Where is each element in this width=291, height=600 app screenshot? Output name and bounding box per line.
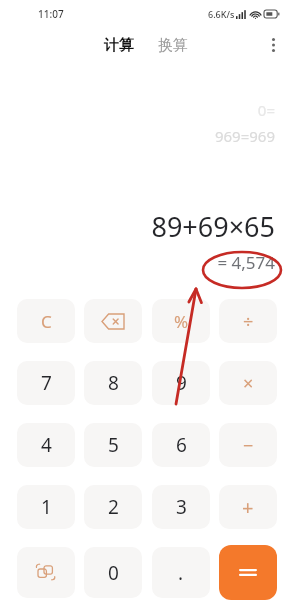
staticText: = 4,574 <box>217 251 275 274</box>
button[interactable]: C <box>17 299 75 343</box>
staticText: 8 <box>108 370 119 396</box>
staticText: 7 <box>41 370 52 396</box>
button[interactable]: ÷ <box>219 299 277 343</box>
button[interactable]: 3 <box>152 485 210 529</box>
staticText: 0= <box>257 100 275 120</box>
button[interactable]: 6 <box>152 423 210 467</box>
staticText: 969=969 <box>214 126 275 146</box>
button[interactable]: 1 <box>17 485 75 529</box>
staticText: 计算 <box>104 36 134 55</box>
button[interactable]: 2 <box>84 485 142 529</box>
button[interactable]: 5 <box>84 423 142 467</box>
button[interactable]: 9 <box>152 361 210 405</box>
button[interactable]: 0 <box>84 547 142 598</box>
button[interactable]: 7 <box>17 361 75 405</box>
staticText: 0 <box>108 560 119 586</box>
button[interactable]: × <box>219 361 277 405</box>
staticText: C <box>41 310 52 333</box>
staticText: 9 <box>176 370 187 396</box>
button[interactable]: Equals <box>219 545 277 600</box>
staticText: 3 <box>176 494 187 520</box>
button[interactable]: Backspace <box>84 299 142 343</box>
staticText: 11:07 <box>38 7 64 21</box>
staticText: + <box>242 494 254 521</box>
staticText: 5 <box>108 432 119 458</box>
button[interactable]: % <box>152 299 210 343</box>
staticText: 2 <box>108 494 119 520</box>
button[interactable]: − <box>219 423 277 467</box>
staticText: 6.6K/s <box>208 8 235 20</box>
staticText: 89+69×65 <box>151 208 275 245</box>
staticText: 6 <box>176 432 187 458</box>
button[interactable]: 计算 <box>96 30 142 61</box>
button[interactable]: More options <box>264 30 283 60</box>
button[interactable]: 4 <box>17 423 75 467</box>
staticText: 换算 <box>158 36 188 55</box>
button[interactable]: 换算 <box>150 30 196 61</box>
staticText: ÷ <box>243 309 254 334</box>
button[interactable]: . <box>152 547 210 598</box>
staticText: % <box>174 310 189 333</box>
staticText: 4 <box>41 432 52 458</box>
button[interactable]: Convert <box>17 547 75 598</box>
staticText: 1 <box>41 494 52 520</box>
staticText: × <box>243 371 254 396</box>
button[interactable]: 8 <box>84 361 142 405</box>
staticText: − <box>243 433 254 458</box>
button[interactable]: + <box>219 485 277 529</box>
staticText: . <box>178 560 184 586</box>
